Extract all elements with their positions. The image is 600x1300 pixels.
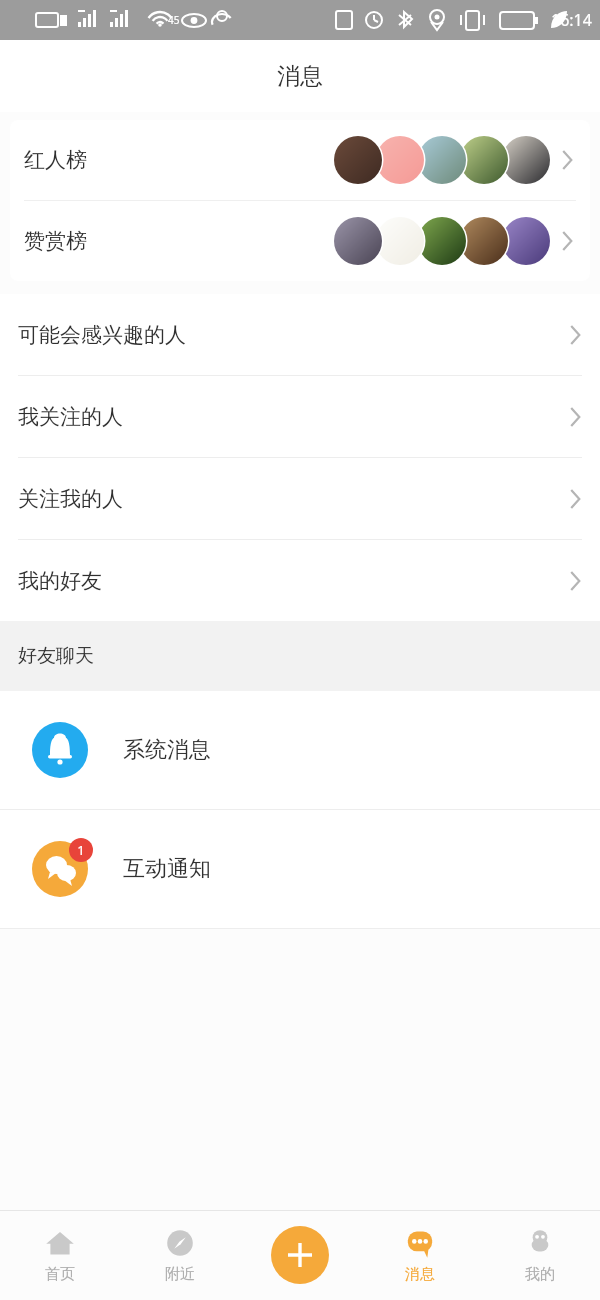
staticText: 可能会感兴趣的人 xyxy=(18,322,186,348)
staticText: 附近 xyxy=(165,1265,195,1284)
staticText: 系统消息 xyxy=(123,736,211,764)
button[interactable]: Create post xyxy=(271,1226,329,1284)
staticText: 我的 xyxy=(525,1265,555,1284)
staticText: 好友聊天 xyxy=(18,644,94,668)
button[interactable]: 我的 xyxy=(480,1210,600,1300)
button[interactable]: 赞赏榜 xyxy=(10,201,590,281)
staticText: 红人榜 xyxy=(24,147,87,173)
button[interactable]: 消息 xyxy=(360,1210,480,1300)
staticText: 赞赏榜 xyxy=(24,228,87,254)
staticText: 我的好友 xyxy=(18,568,102,594)
button[interactable]: 红人榜 xyxy=(10,120,590,200)
staticText: 我关注的人 xyxy=(18,404,123,430)
button[interactable]: 关注我的人 xyxy=(0,458,600,539)
staticText: 关注我的人 xyxy=(18,486,123,512)
button[interactable]: 附近 xyxy=(120,1210,240,1300)
button[interactable]: 1 xyxy=(0,810,600,928)
staticText: 消息 xyxy=(405,1265,435,1284)
staticText: 消息 xyxy=(277,62,323,91)
staticText: 16:14 xyxy=(551,9,592,31)
staticText: 首页 xyxy=(45,1265,75,1284)
button[interactable]: 系统消息 xyxy=(0,691,600,809)
button[interactable]: 我的好友 xyxy=(0,540,600,621)
button[interactable]: 首页 xyxy=(0,1210,120,1300)
staticText: 1 xyxy=(77,841,85,859)
button[interactable]: 可能会感兴趣的人 xyxy=(0,294,600,375)
button[interactable]: 我关注的人 xyxy=(0,376,600,457)
staticText: 互动通知 xyxy=(123,855,211,883)
staticText: 45 xyxy=(168,13,180,27)
